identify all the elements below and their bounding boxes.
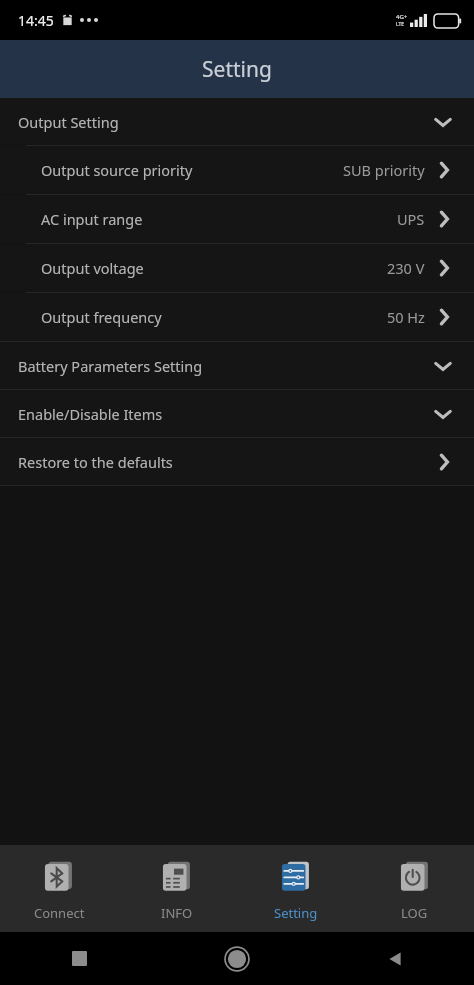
button[interactable]: Output frequency	[0, 293, 474, 341]
staticText: Output Setting	[18, 112, 119, 132]
button[interactable]: Output voltage	[0, 244, 474, 292]
staticText: Setting	[202, 55, 272, 84]
button[interactable]: Enable/Disable Items	[0, 390, 474, 437]
staticText: Enable/Disable Items	[18, 404, 163, 424]
staticText: Output frequency	[41, 307, 162, 327]
button[interactable]: Output source priority	[0, 146, 474, 194]
button[interactable]: INFO	[118, 845, 236, 932]
staticText: 50 Hz	[387, 307, 425, 327]
button[interactable]: Output Setting	[0, 98, 474, 145]
other: LOG	[396, 858, 434, 896]
button[interactable]: Connect	[0, 845, 118, 932]
other: INFO	[158, 858, 196, 896]
staticText: 14:45	[18, 11, 54, 30]
staticText: UPS	[397, 209, 425, 229]
staticText: Battery Parameters Setting	[18, 356, 203, 376]
staticText: Output voltage	[41, 258, 144, 278]
staticText: 4G+	[396, 13, 408, 21]
staticText: INFO	[161, 904, 193, 922]
staticText: LOG	[401, 904, 428, 922]
staticText: AC input range	[41, 209, 143, 229]
button[interactable]: Setting	[236, 845, 355, 932]
button[interactable]: Battery Parameters Setting	[0, 342, 474, 389]
staticText: SUB priority	[343, 160, 425, 180]
button[interactable]: AC input range	[0, 195, 474, 243]
other: Setting	[277, 858, 315, 896]
button[interactable]: Back	[385, 949, 405, 969]
staticText: Setting	[274, 904, 318, 922]
other: Connect	[40, 858, 78, 896]
staticText: Restore to the defaults	[18, 452, 173, 472]
button[interactable]: Recent apps	[72, 951, 87, 966]
staticText: LTE	[396, 21, 405, 28]
button[interactable]: Restore to the defaults	[0, 438, 474, 485]
staticText: Output source priority	[41, 160, 193, 180]
button[interactable]: Home	[224, 946, 250, 972]
button[interactable]: LOG	[355, 845, 474, 932]
staticText: 230 V	[387, 258, 425, 278]
staticText: Connect	[34, 904, 85, 922]
